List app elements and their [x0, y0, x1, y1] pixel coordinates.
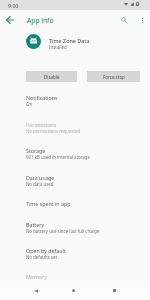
staticText: On: [26, 101, 33, 107]
staticText: Time Zone Data: [49, 37, 90, 44]
button[interactable]: Recent apps: [103, 283, 125, 298]
staticText: No data used: [26, 181, 54, 187]
staticText: 901 kB used in internal storage: [26, 154, 91, 160]
button[interactable]: Back: [25, 283, 47, 298]
button[interactable]: Search: [117, 13, 131, 27]
staticText: No permissions requested: [26, 128, 81, 134]
staticText: 9:00: [8, 2, 19, 9]
button[interactable]: Home: [62, 283, 84, 298]
button[interactable]: Battery: [0, 217, 150, 243]
staticText: App info: [27, 16, 54, 25]
button[interactable]: Notifications: [0, 90, 150, 116]
staticText: Disable: [44, 74, 60, 80]
button[interactable]: Open by default: [0, 243, 150, 269]
button[interactable]: Memory: [0, 269, 150, 290]
button[interactable]: Force stop: [87, 71, 140, 82]
button[interactable]: Data usage: [0, 170, 150, 196]
staticText: Battery: [26, 221, 45, 228]
button[interactable]: Permissions: [0, 117, 150, 143]
staticText: Memory: [26, 273, 47, 280]
staticText: Force stop: [103, 74, 125, 80]
staticText: Open by default: [26, 247, 66, 254]
staticText: No battery use since last full charge: [26, 228, 100, 234]
staticText: Permissions: [26, 121, 57, 128]
staticText: Data usage: [26, 174, 55, 181]
button[interactable]: More options: [135, 13, 149, 27]
button[interactable]: Disable: [26, 71, 77, 82]
staticText: Storage: [26, 147, 46, 154]
staticText: No defaults set: [26, 254, 58, 260]
staticText: Time spent in app: [26, 200, 71, 207]
button[interactable]: Navigate up: [3, 13, 17, 27]
button[interactable]: Storage: [0, 143, 150, 169]
staticText: Installed: [49, 44, 67, 50]
staticText: Notifications: [26, 94, 58, 101]
button[interactable]: Time spent in app: [0, 196, 150, 217]
